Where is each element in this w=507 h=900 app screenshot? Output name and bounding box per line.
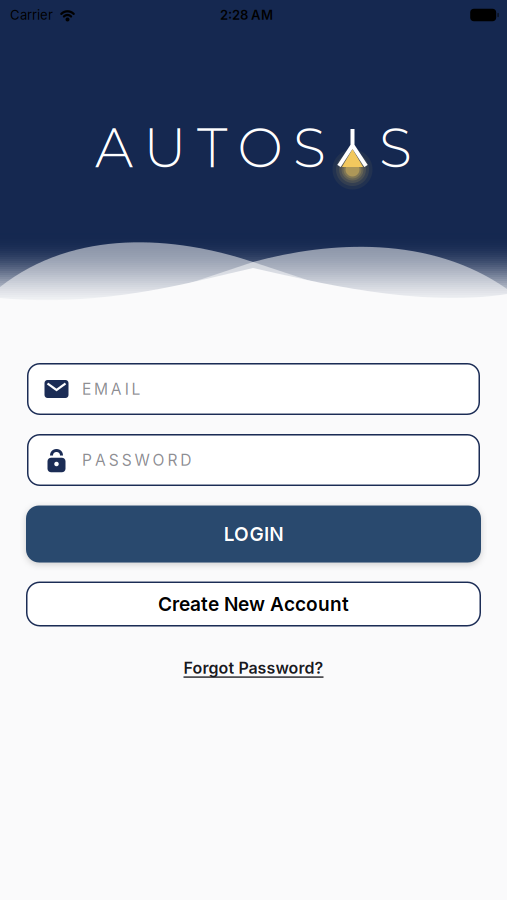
staticText: I [125, 380, 129, 398]
staticText: A [95, 451, 106, 469]
staticText: W [135, 451, 150, 469]
staticText: O [152, 451, 164, 469]
staticText: L [132, 380, 141, 398]
staticText: D [180, 451, 191, 469]
staticText: M [94, 380, 108, 398]
staticText: S [109, 451, 119, 469]
button[interactable]: E [27, 363, 480, 415]
button[interactable]: Create New Account [26, 581, 481, 626]
button[interactable]: P [27, 434, 480, 486]
staticText: O [237, 115, 282, 181]
staticText: Forgot Password? [183, 658, 323, 678]
staticText: A [111, 380, 122, 398]
staticText: A [95, 115, 133, 181]
staticText: S [293, 115, 326, 181]
staticText: T [197, 115, 227, 181]
staticText: Create New Account [158, 592, 349, 616]
button[interactable]: Forgot Password? [183, 658, 323, 678]
staticText: Carrier [10, 7, 53, 23]
staticText: S [379, 115, 412, 181]
staticText: E [82, 380, 91, 398]
button[interactable]: LOGIN [26, 505, 481, 562]
staticText: LOGIN [224, 522, 283, 546]
staticText: P [82, 451, 92, 469]
staticText: U [143, 115, 186, 181]
staticText: R [167, 451, 177, 469]
staticText: S [122, 451, 132, 469]
staticText: 2:28 AM [220, 7, 273, 23]
